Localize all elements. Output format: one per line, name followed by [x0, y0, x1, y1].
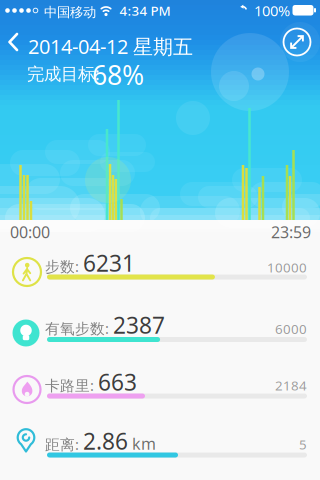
- staticText: 4:34 PM: [119, 2, 170, 19]
- staticText: 68%: [92, 57, 144, 92]
- staticText: 2.86: [83, 426, 128, 456]
- staticText: 5: [299, 435, 307, 453]
- staticText: 100%: [254, 1, 290, 20]
- staticText: 6231: [83, 248, 135, 278]
- staticText: 6000: [275, 320, 307, 338]
- staticText: 10000: [267, 258, 307, 276]
- staticText: 663: [98, 367, 137, 397]
- staticText: 2184: [275, 376, 307, 394]
- staticText: 距离:: [45, 435, 79, 454]
- staticText: 步数:: [45, 257, 79, 276]
- staticText: 有氧步数:: [45, 319, 109, 338]
- button[interactable]: Back: [0, 27, 26, 57]
- staticText: 00:00: [10, 221, 50, 243]
- staticText: 2387: [113, 310, 165, 340]
- staticText: 完成目标:: [27, 62, 100, 85]
- staticText: 卡路里:: [45, 376, 94, 395]
- button[interactable]: Expand chart: [282, 27, 312, 57]
- staticText: 中国移动: [44, 4, 96, 20]
- staticText: 23:59: [271, 221, 311, 243]
- staticText: 2014-04-12 星期五: [28, 33, 193, 60]
- staticText: km: [132, 433, 156, 454]
